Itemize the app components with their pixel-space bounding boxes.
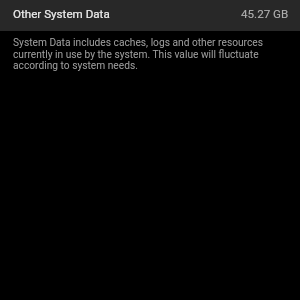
staticText: System Data includes caches, logs and ot… (13, 37, 289, 71)
button[interactable]: Other System Data (0, 0, 300, 31)
staticText: 45.27 GB (241, 7, 289, 21)
staticText: Other System Data (13, 7, 110, 21)
